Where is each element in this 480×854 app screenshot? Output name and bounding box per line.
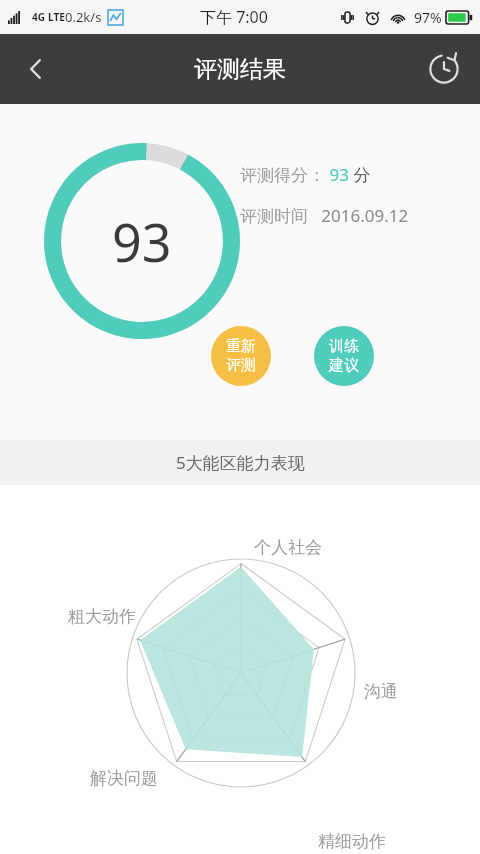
button[interactable]: 训练 [314, 326, 374, 386]
staticText: 4G [32, 10, 45, 24]
button[interactable]: History [420, 45, 468, 93]
button[interactable]: 重新 [211, 326, 271, 386]
staticText: 97% [414, 8, 442, 27]
staticText: 评测时间 2016.09.12 [240, 204, 409, 227]
staticText: 评测得分： 93 分 [240, 163, 371, 186]
staticText: 精细动作 [318, 831, 386, 852]
staticText: 解决问题 [90, 768, 158, 789]
staticText: 0.2k/s [65, 8, 102, 26]
staticText: 93 [112, 206, 172, 277]
staticText: 个人社会 [254, 537, 322, 558]
staticText: 评测 [226, 356, 256, 375]
staticText: 5大能区能力表现 [176, 451, 305, 474]
staticText: LTE [48, 10, 65, 24]
staticText: 建议 [329, 356, 359, 375]
staticText: 沟通 [364, 681, 398, 702]
staticText: 训练 [329, 337, 359, 356]
staticText: 重新 [226, 337, 256, 356]
staticText: 评测结果 [194, 55, 286, 84]
staticText: 下午 7:00 [200, 6, 268, 28]
button[interactable]: Back [12, 45, 60, 93]
staticText: 粗大动作 [68, 606, 136, 627]
